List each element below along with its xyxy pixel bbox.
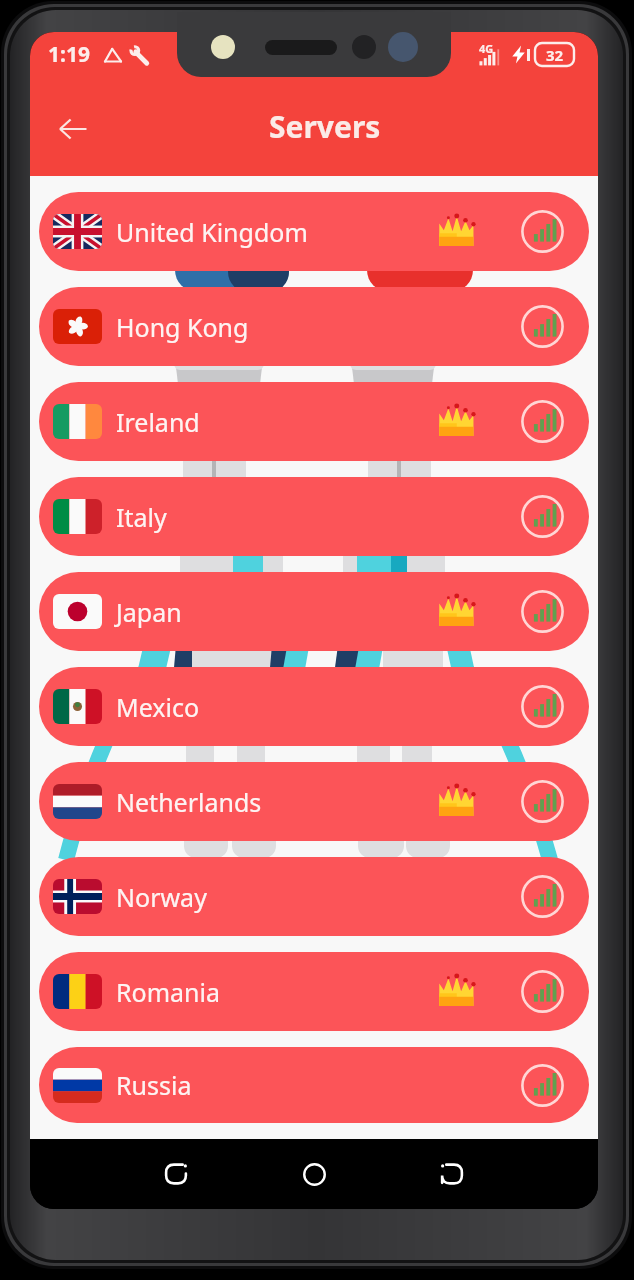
staticText: Romania: [116, 975, 221, 1009]
button[interactable]: Japan: [39, 572, 589, 651]
button[interactable]: Netherlands: [39, 762, 589, 841]
staticText: 1:19: [48, 40, 90, 69]
button[interactable]: Hong Kong: [39, 287, 589, 366]
staticText: Norway: [116, 880, 207, 914]
staticText: Russia: [116, 1068, 192, 1102]
button[interactable]: Norway: [39, 857, 589, 936]
staticText: United Kingdom: [116, 215, 308, 249]
button[interactable]: Back: [48, 102, 98, 152]
button[interactable]: Recent apps: [147, 1145, 205, 1203]
button[interactable]: Italy: [39, 477, 589, 556]
staticText: Mexico: [116, 690, 200, 724]
staticText: Ireland: [116, 405, 200, 439]
staticText: 32: [546, 45, 564, 65]
staticText: Japan: [116, 595, 182, 629]
staticText: Hong Kong: [116, 310, 249, 344]
button[interactable]: Romania: [39, 952, 589, 1031]
button[interactable]: Back: [423, 1145, 481, 1203]
button[interactable]: Mexico: [39, 667, 589, 746]
button[interactable]: Home: [285, 1145, 343, 1203]
staticText: Italy: [116, 500, 167, 534]
button[interactable]: Ireland: [39, 382, 589, 461]
button[interactable]: United Kingdom: [39, 192, 589, 271]
staticText: Servers: [269, 106, 381, 147]
staticText: Netherlands: [116, 785, 262, 819]
staticText: 4G: [479, 41, 494, 56]
button[interactable]: Russia: [39, 1047, 589, 1123]
